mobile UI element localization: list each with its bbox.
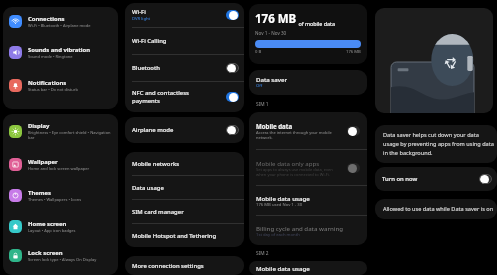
button[interactable]: Mobile data	[249, 112, 367, 149]
staticText: Home and lock screen wallpaper	[28, 166, 90, 171]
button[interactable]: Wi-Fi	[125, 3, 244, 27]
staticText: Off	[256, 83, 263, 89]
button[interactable]: Toggle	[347, 126, 360, 136]
button[interactable]: Bluetooth	[125, 55, 244, 81]
button[interactable]: Billing cycle and data warning	[249, 216, 367, 245]
staticText: 176 MB used Nov 1 - 30	[256, 202, 303, 208]
staticText: Notifications	[28, 79, 67, 87]
staticText: 0 B	[255, 49, 262, 55]
button[interactable]: Notifications	[3, 69, 118, 102]
button[interactable]: Themes	[3, 180, 118, 211]
staticText: Data saver	[256, 75, 288, 83]
staticText: Allowed to use data while Data saver is …	[383, 205, 494, 213]
staticText: Status bar • Do not disturb	[28, 87, 78, 92]
staticText: Wi-Fi	[132, 8, 146, 16]
staticText: of mobile data	[297, 20, 336, 27]
staticText: NFC and contactless payments	[132, 89, 189, 105]
button[interactable]: SIM card manager	[125, 200, 244, 223]
button[interactable]: Toggle	[226, 125, 239, 135]
staticText: Lock screen	[28, 249, 63, 257]
button[interactable]: Mobile data usage	[249, 261, 367, 275]
button[interactable]: Wallpaper	[3, 148, 118, 180]
button[interactable]: Wi-Fi Calling	[125, 28, 244, 54]
button[interactable]: Toggle	[226, 10, 239, 20]
button[interactable]: Home screen	[3, 211, 118, 241]
button[interactable]: Mobile Hotspot and Tethering	[125, 224, 244, 247]
staticText: Themes	[28, 189, 51, 197]
button[interactable]: Data usage	[125, 176, 244, 199]
staticText: Data usage	[132, 184, 164, 192]
staticText: SIM 1	[256, 101, 269, 108]
staticText: Layout • App icon badges	[28, 228, 76, 233]
staticText: More connection settings	[132, 262, 204, 270]
staticText: Nov 1 - Nov 30	[255, 30, 287, 36]
button[interactable]: Toggle	[226, 63, 239, 73]
button[interactable]: Toggle	[347, 163, 360, 173]
button[interactable]: Airplane mode	[125, 117, 244, 143]
button[interactable]: Toggle	[479, 174, 492, 184]
button[interactable]: Sounds and vibration	[3, 36, 118, 69]
staticText: SIM 2	[256, 250, 269, 257]
staticText: 176 MB	[346, 49, 361, 55]
staticText: Airplane mode	[132, 126, 174, 134]
staticText: Sound mode • Ringtone	[28, 54, 73, 59]
staticText: Brightness • Eye comfort shield • Naviga…	[28, 130, 114, 140]
staticText: Screen lock type • Always On Display	[28, 257, 97, 262]
staticText: Set apps to always use mobile data, even…	[256, 167, 333, 177]
button[interactable]: Turn on now	[375, 167, 497, 191]
button[interactable]: Toggle	[226, 92, 239, 102]
staticText: Wallpaper	[28, 158, 58, 166]
button[interactable]: Mobile networks	[125, 152, 244, 175]
staticText: 176 MB	[255, 11, 297, 27]
staticText: Wi-Fi • Bluetooth • Airplane mode	[28, 23, 91, 28]
staticText: Display	[28, 122, 50, 130]
staticText: Mobile data only apps	[256, 159, 320, 167]
button[interactable]: Mobile data usage	[249, 186, 367, 215]
staticText: Data saver helps cut down your data usag…	[383, 131, 495, 157]
staticText: Access the internet through your mobile …	[256, 130, 332, 140]
staticText: Themes • Wallpapers • Icons	[28, 197, 82, 202]
staticText: Connections	[28, 15, 65, 23]
button[interactable]: NFC and contactless payments	[125, 82, 244, 112]
staticText: DVR light	[132, 16, 151, 22]
button[interactable]: Data saver	[249, 70, 367, 95]
staticText: SIM card manager	[132, 208, 184, 216]
staticText: Mobile networks	[132, 160, 180, 168]
staticText: Turn on now	[382, 175, 418, 183]
button[interactable]: Connections	[3, 7, 118, 36]
button[interactable]: More connection settings	[125, 256, 244, 275]
staticText: Sounds and vibration	[28, 46, 91, 54]
button[interactable]: Display	[3, 114, 118, 148]
staticText: Mobile Hotspot and Tethering	[132, 232, 217, 240]
staticText: 1st day of each month	[256, 232, 300, 238]
staticText: Home screen	[28, 220, 67, 228]
staticText: Billing cycle and data warning	[256, 224, 344, 232]
staticText: Mobile data	[256, 122, 293, 130]
staticText: Bluetooth	[132, 64, 160, 72]
staticText: Wi-Fi Calling	[132, 37, 167, 45]
staticText: Mobile data usage	[256, 194, 310, 202]
staticText: Mobile data usage	[256, 264, 310, 272]
button[interactable]: Lock screen	[3, 241, 118, 270]
button[interactable]: Mobile data only apps	[249, 150, 367, 185]
